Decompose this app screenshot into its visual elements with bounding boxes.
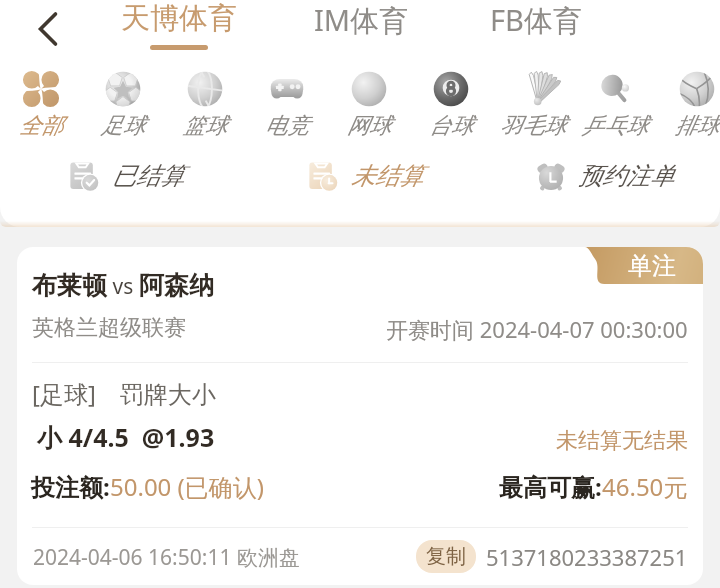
- button[interactable]: 网球: [328, 71, 410, 140]
- staticText: 复制: [426, 544, 466, 569]
- staticText: 天博体育: [121, 0, 237, 37]
- staticText: 5137180233387251: [486, 542, 688, 572]
- button[interactable]: IM体育: [314, 0, 409, 40]
- staticText: IM体育: [314, 0, 409, 40]
- staticText: 全部: [19, 112, 63, 140]
- staticText: 未结算: [351, 161, 423, 191]
- staticText: 2024-04-06 16:50:11 欧洲盘: [33, 543, 300, 572]
- staticText: vs: [107, 272, 139, 301]
- button[interactable]: 乒乓球: [574, 71, 656, 140]
- staticText: 排球: [675, 112, 719, 140]
- button[interactable]: 未结算: [307, 159, 423, 193]
- button[interactable]: 天博体育: [121, 0, 237, 50]
- staticText: 未结算无结果: [556, 427, 688, 455]
- button[interactable]: 篮球: [164, 71, 246, 140]
- staticText: 布莱顿: [32, 270, 107, 301]
- staticText: 46.50元: [602, 470, 688, 503]
- button[interactable]: FB体育: [490, 0, 582, 40]
- staticText: 英格兰超级联赛: [32, 314, 186, 342]
- button[interactable]: 预约注单: [534, 159, 674, 193]
- staticText: 投注额:: [31, 470, 110, 503]
- staticText: 足球: [101, 112, 145, 140]
- button[interactable]: 复制: [416, 540, 476, 573]
- button[interactable]: 电竞: [246, 71, 328, 140]
- staticText: 电竞: [265, 112, 309, 140]
- staticText: 乒乓球: [582, 112, 648, 140]
- staticText: 50.00 (已确认): [110, 470, 264, 503]
- staticText: 网球: [347, 112, 391, 140]
- button[interactable]: 已结算: [68, 159, 184, 193]
- button[interactable]: 羽毛球: [492, 71, 574, 140]
- staticText: 羽毛球: [500, 112, 566, 140]
- staticText: 已结算: [112, 161, 184, 191]
- staticText: 最高可赢:: [499, 470, 602, 503]
- staticText: 小 4/4.5 @1.93: [37, 420, 215, 454]
- staticText: [足球] 罚牌大小: [32, 377, 216, 410]
- staticText: 篮球: [183, 112, 227, 140]
- staticText: 预约注单: [578, 161, 674, 191]
- staticText: 单注: [628, 251, 676, 281]
- staticText: 台球: [429, 112, 473, 140]
- button[interactable]: 足球: [82, 71, 164, 140]
- staticText: 开赛时间 2024-04-07 00:30:00: [386, 314, 688, 344]
- staticText: FB体育: [490, 0, 582, 40]
- staticText: 阿森纳: [139, 270, 214, 301]
- button[interactable]: 台球: [410, 71, 492, 140]
- button[interactable]: Back: [18, 4, 64, 50]
- button[interactable]: 全部: [0, 71, 82, 140]
- button[interactable]: 排球: [656, 71, 720, 140]
